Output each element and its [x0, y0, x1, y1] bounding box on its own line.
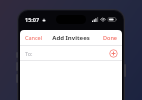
button[interactable]: Done	[98, 31, 122, 44]
button[interactable]: Cancel	[20, 31, 48, 44]
staticText: Cancel	[25, 34, 43, 41]
staticText: Add Invitees	[52, 34, 90, 42]
staticText: 15:07	[25, 16, 40, 23]
staticText: To:	[25, 50, 33, 57]
button[interactable]: Add contact	[109, 49, 118, 58]
staticText: Done	[103, 34, 117, 41]
